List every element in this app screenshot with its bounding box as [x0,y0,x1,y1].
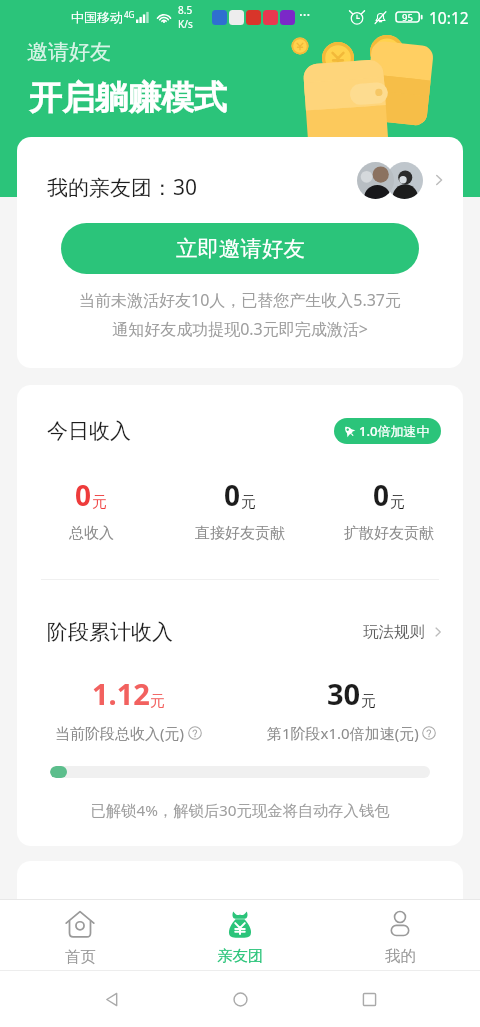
other: Home [223,982,257,1016]
other: Back [95,982,129,1016]
button[interactable]: 阶段累计收入 [17,619,463,645]
button[interactable]: 1.0倍加速中 [334,418,441,444]
staticText: 当前未激活好友10人，已替您产生收入5.37元 [17,289,463,311]
button[interactable]: 首页 [0,900,160,970]
staticText: 8.5 [178,3,193,17]
staticText: 1.12 [92,674,150,713]
button[interactable]: 我的邀请人 [17,861,463,933]
button[interactable]: 亲友团 [160,900,320,970]
staticText: 0 [75,476,92,514]
staticText: 元 [92,493,107,512]
staticText: 总收入 [69,524,114,543]
staticText: 元 [150,692,165,711]
staticText: 0 [373,476,390,514]
staticText: 我的 [385,946,416,966]
staticText: 开启躺赚模式 [29,77,227,119]
staticText: 我的邀请人 [47,907,152,933]
staticText: 30 [327,674,361,713]
button[interactable]: 立即邀请好友 [61,223,419,274]
button[interactable]: 我的亲友团：30 [17,137,463,223]
staticText: 我的亲友团：30 [47,173,198,202]
staticText: 首页 [65,947,96,967]
staticText: 扩散好友贡献 [344,524,434,543]
staticText: 元 [241,493,256,512]
staticText: 邀请好友 [27,39,111,65]
staticText: 通知好友成功提现0.3元即完成激活> [17,318,463,340]
staticText: 直接好友贡献 [195,524,285,543]
staticText: 已解锁4%，解锁后30元现金将自动存入钱包 [17,800,463,821]
staticText: 玩法规则 [363,622,425,642]
staticText: K/s [178,17,193,31]
staticText: 今日收入 [47,418,131,444]
staticText: 0 [224,476,241,514]
staticText: 当前阶段总收入(元) [55,723,185,743]
staticText: 中国移动 [71,9,123,25]
staticText: 阶段累计收入 [47,619,173,645]
staticText: 元 [390,493,405,512]
other: Recents [352,982,386,1016]
staticText: 1.0倍加速中 [359,422,430,440]
staticText: 第1阶段x1.0倍加速(元) [267,723,419,743]
staticText: 亲友团 [217,946,264,966]
staticText: 95 [402,11,413,24]
button[interactable]: 我的 [320,900,480,970]
staticText: 立即邀请好友 [176,235,305,262]
staticText: 4G [124,9,135,20]
staticText: 10:12 [429,7,469,28]
staticText: ··· [299,5,311,24]
staticText: 元 [361,692,376,711]
